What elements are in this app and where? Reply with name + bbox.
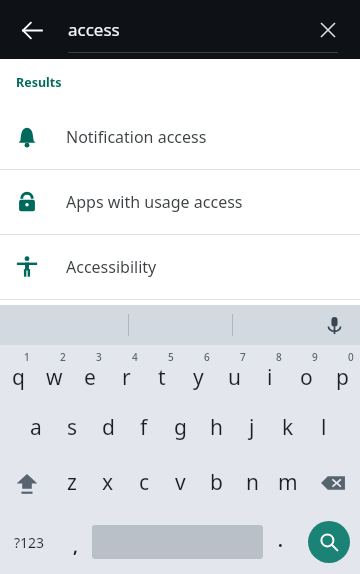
button[interactable]: d bbox=[90, 400, 126, 455]
staticText: 0 bbox=[348, 350, 354, 364]
staticText: ?123 bbox=[14, 533, 45, 552]
staticText: 1 bbox=[24, 350, 30, 364]
button[interactable]: access bbox=[68, 18, 314, 41]
button[interactable]: Back bbox=[10, 8, 54, 52]
staticText: , bbox=[73, 535, 78, 558]
button[interactable]: 4 bbox=[108, 345, 144, 400]
staticText: m bbox=[278, 468, 298, 497]
button[interactable]: x bbox=[90, 455, 126, 510]
button[interactable]: z bbox=[54, 455, 90, 510]
staticText: s bbox=[67, 413, 78, 442]
staticText: . bbox=[278, 529, 283, 552]
staticText: 4 bbox=[132, 350, 138, 364]
staticText: 3 bbox=[96, 350, 102, 364]
button[interactable]: c bbox=[126, 455, 162, 510]
staticText: l bbox=[321, 413, 327, 442]
staticText: o bbox=[300, 363, 313, 392]
staticText: access bbox=[68, 18, 120, 41]
staticText: c bbox=[139, 468, 150, 497]
staticText: h bbox=[210, 413, 223, 442]
button[interactable]: 1 bbox=[0, 345, 36, 400]
staticText: x bbox=[102, 468, 114, 497]
button[interactable]: Accessibility bbox=[0, 235, 360, 299]
button[interactable]: Apps with usage access bbox=[0, 170, 360, 234]
staticText: t bbox=[158, 363, 166, 392]
staticText: e bbox=[84, 363, 96, 392]
staticText: b bbox=[210, 468, 223, 497]
button[interactable]: g bbox=[162, 400, 198, 455]
staticText: Apps with usage access bbox=[66, 191, 243, 213]
button[interactable]: v bbox=[162, 455, 198, 510]
staticText: 7 bbox=[240, 350, 246, 364]
button[interactable]: 3 bbox=[72, 345, 108, 400]
button[interactable]: , bbox=[59, 510, 92, 574]
button[interactable]: Clear search bbox=[308, 10, 348, 50]
staticText: r bbox=[122, 363, 131, 392]
button[interactable]: Shift bbox=[0, 455, 54, 510]
button[interactable]: 7 bbox=[216, 345, 252, 400]
button[interactable]: ?123 bbox=[0, 510, 59, 574]
staticText: 2 bbox=[60, 350, 66, 364]
button[interactable]: m bbox=[270, 455, 306, 510]
staticText: n bbox=[246, 468, 259, 497]
staticText: Results bbox=[16, 74, 62, 91]
staticText: 8 bbox=[276, 350, 282, 364]
staticText: 9 bbox=[312, 350, 318, 364]
staticText: i bbox=[267, 363, 273, 392]
staticText: q bbox=[12, 363, 25, 392]
staticText: Accessibility bbox=[66, 256, 157, 278]
staticText: j bbox=[249, 413, 255, 442]
staticText: 6 bbox=[204, 350, 210, 364]
staticText: w bbox=[46, 363, 63, 392]
button[interactable]: s bbox=[54, 400, 90, 455]
staticText: g bbox=[174, 413, 187, 442]
button[interactable]: 8 bbox=[252, 345, 288, 400]
button[interactable]: 9 bbox=[288, 345, 324, 400]
button[interactable]: h bbox=[198, 400, 234, 455]
button[interactable]: b bbox=[198, 455, 234, 510]
button[interactable]: Notification access bbox=[0, 105, 360, 169]
button[interactable]: Search bbox=[308, 521, 350, 563]
staticText: f bbox=[140, 413, 148, 442]
staticText: v bbox=[175, 468, 186, 497]
button[interactable]: l bbox=[306, 400, 342, 455]
staticText: a bbox=[30, 413, 42, 442]
button[interactable]: . bbox=[263, 510, 298, 574]
staticText: d bbox=[102, 413, 115, 442]
button[interactable]: f bbox=[126, 400, 162, 455]
staticText: u bbox=[228, 363, 241, 392]
button[interactable]: Voice input bbox=[316, 307, 352, 343]
button[interactable]: Backspace bbox=[306, 455, 360, 510]
button[interactable]: j bbox=[234, 400, 270, 455]
button[interactable]: n bbox=[234, 455, 270, 510]
staticText: y bbox=[193, 363, 204, 392]
staticText: p bbox=[336, 363, 349, 392]
button[interactable]: a bbox=[18, 400, 54, 455]
button[interactable]: 6 bbox=[180, 345, 216, 400]
staticText: z bbox=[67, 468, 77, 497]
button[interactable]: 5 bbox=[144, 345, 180, 400]
staticText: k bbox=[282, 413, 294, 442]
button[interactable]: 2 bbox=[36, 345, 72, 400]
button[interactable]: k bbox=[270, 400, 306, 455]
staticText: 5 bbox=[168, 350, 174, 364]
staticText: Notification access bbox=[66, 126, 207, 148]
button[interactable]: 0 bbox=[324, 345, 360, 400]
